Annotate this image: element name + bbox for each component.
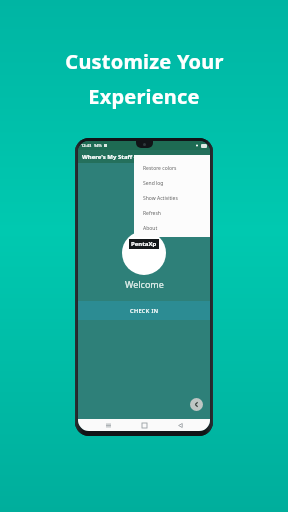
staticText: Show Activities <box>143 195 178 202</box>
staticText: CHECK IN <box>130 307 159 314</box>
staticText: Experience <box>88 83 200 110</box>
staticText: PentaXp <box>131 240 157 248</box>
staticText: About <box>143 225 158 232</box>
staticText: 12:43 <box>81 143 92 148</box>
staticText: Customize Your <box>65 48 224 75</box>
button[interactable]: Collapse <box>190 398 203 411</box>
staticText: Refresh <box>143 210 161 217</box>
button[interactable]: Recents <box>102 419 114 431</box>
button[interactable]: CHECK IN <box>78 301 210 320</box>
staticText: Welcome <box>125 278 164 290</box>
button[interactable]: Home <box>138 419 150 431</box>
button[interactable]: Restore colors <box>143 161 210 176</box>
staticText: Where's My Staff - R <box>82 153 142 161</box>
staticText: 94% <box>94 143 102 148</box>
staticText: Send log <box>143 180 164 187</box>
button[interactable]: Show Activities <box>143 191 210 206</box>
button[interactable]: Refresh <box>143 206 210 221</box>
button[interactable]: About <box>143 221 210 236</box>
button[interactable]: Back <box>174 419 186 431</box>
button[interactable]: Send log <box>143 176 210 191</box>
staticText: Restore colors <box>143 165 177 172</box>
